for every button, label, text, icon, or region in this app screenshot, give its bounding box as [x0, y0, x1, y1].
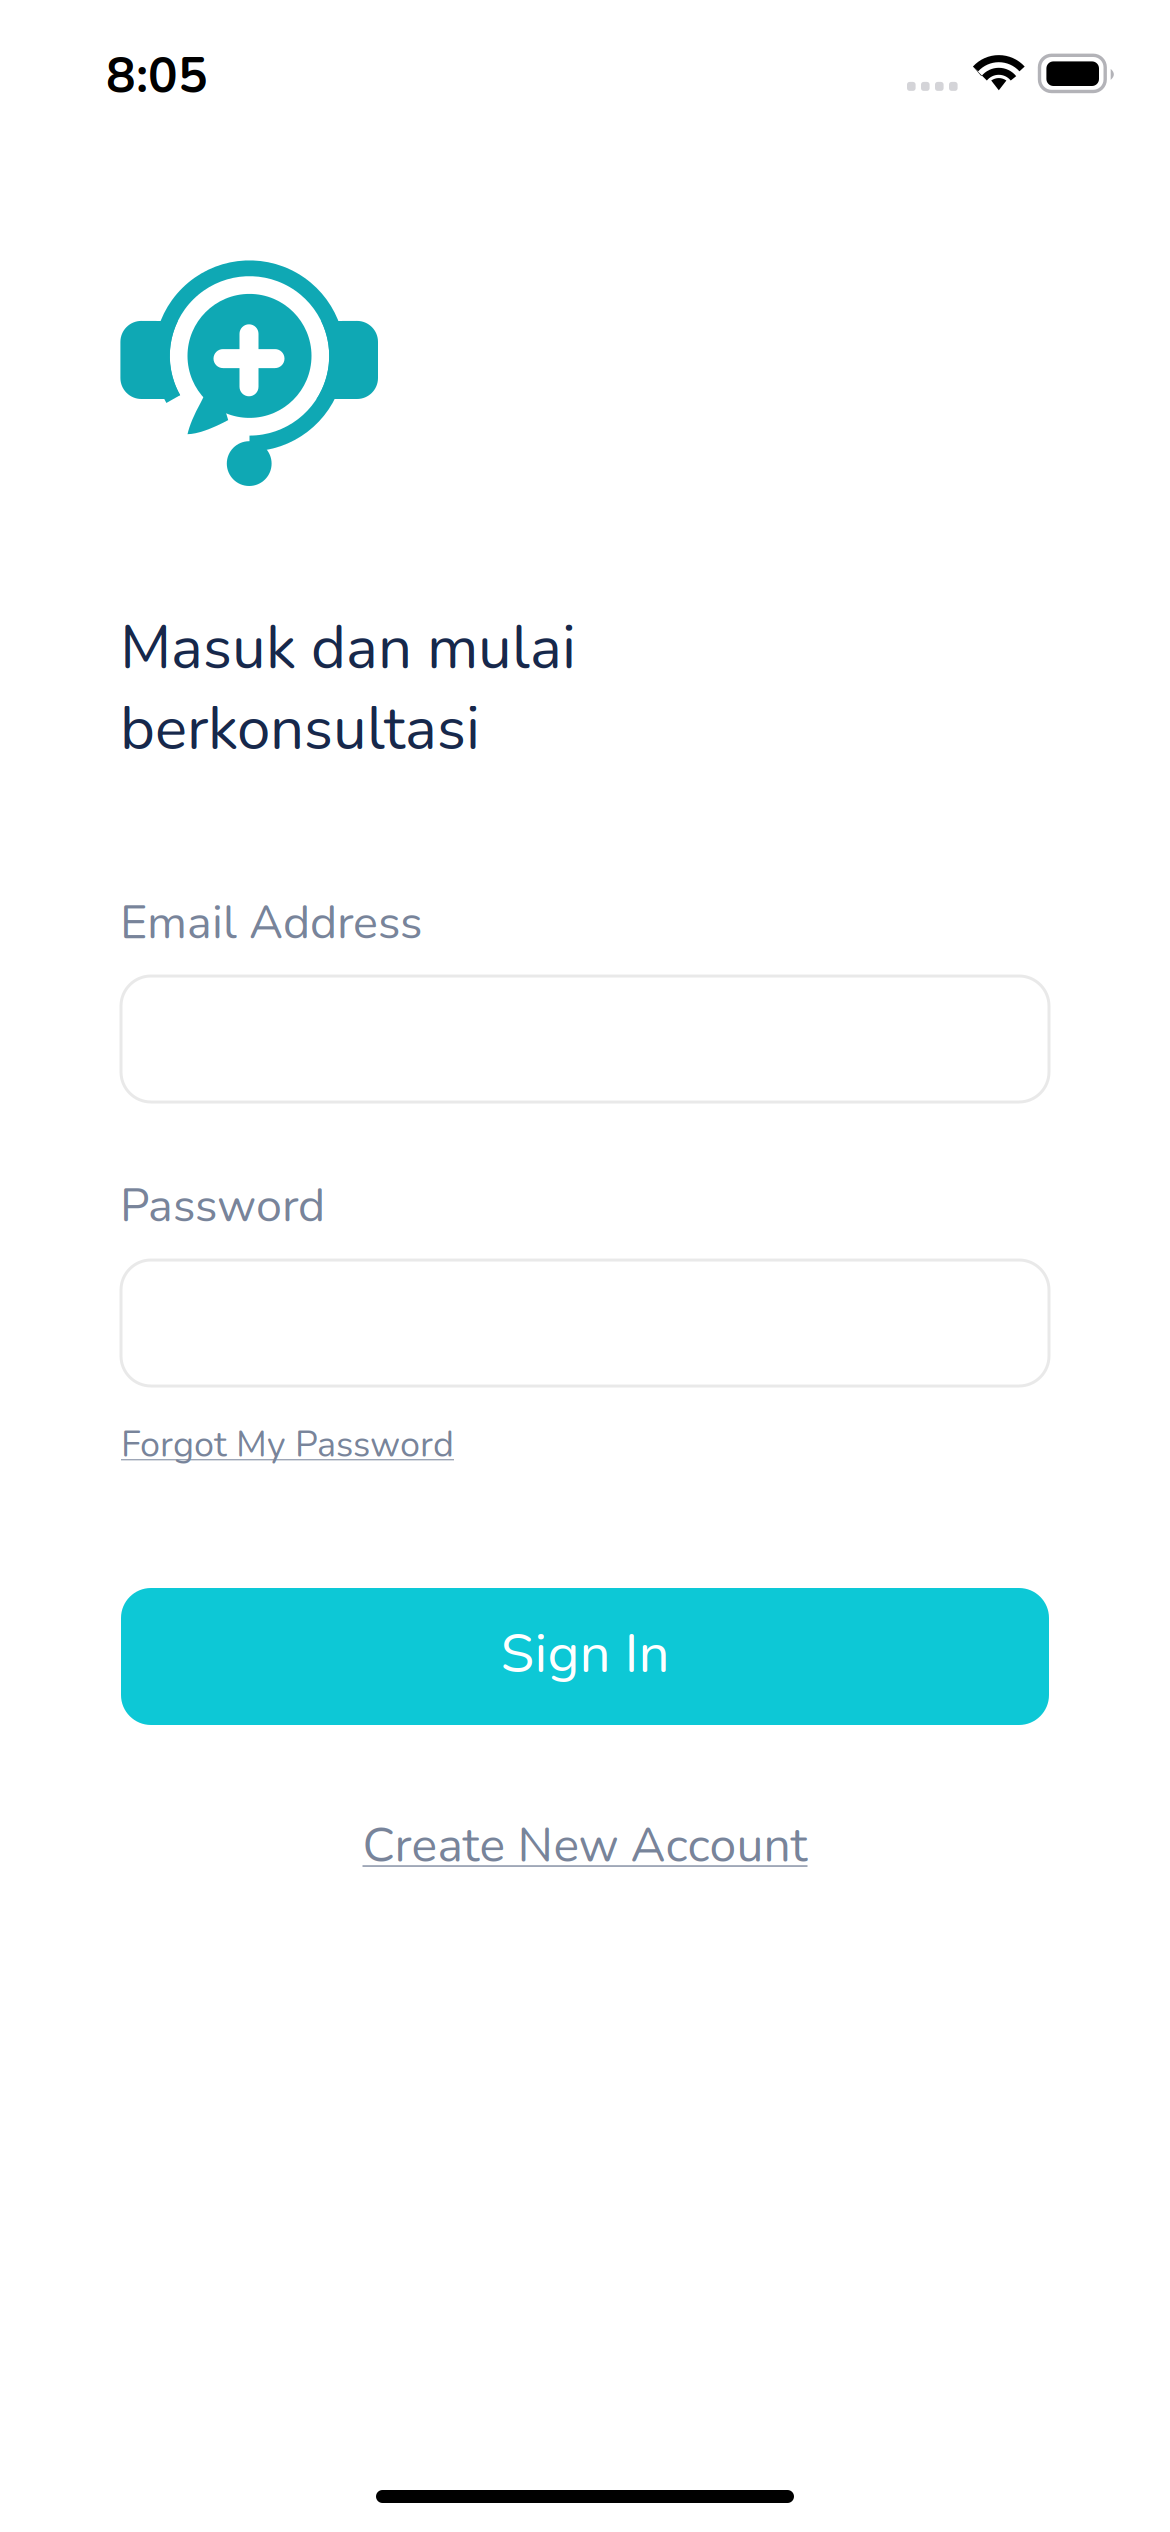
staticText: Forgot My Password	[121, 1420, 454, 1469]
staticText: Password	[120, 1174, 325, 1238]
staticText: Create New Account	[362, 1813, 807, 1878]
button[interactable]: Forgot My Password	[121, 1420, 454, 1469]
button[interactable]: Create New Account	[121, 1813, 1049, 1878]
staticText: Email Address	[120, 891, 422, 955]
staticText: Masuk dan mulai berkonsultasi	[120, 607, 576, 770]
button[interactable]: Sign In	[121, 1588, 1049, 1725]
staticText: Sign In	[500, 1617, 669, 1691]
staticText: 8:05	[106, 42, 208, 109]
